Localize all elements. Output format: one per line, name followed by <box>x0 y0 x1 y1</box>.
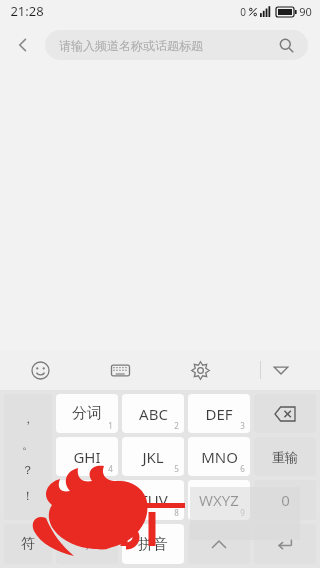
button[interactable]: 重输 <box>254 437 316 476</box>
staticText: ABC <box>139 404 168 424</box>
staticText: 21:28 <box>10 2 44 20</box>
other: Comma <box>56 524 118 564</box>
staticText: MNO <box>201 447 238 467</box>
staticText: 90 <box>299 4 312 19</box>
button[interactable]: PQRS <box>56 480 118 520</box>
button[interactable]: 符 <box>4 524 52 564</box>
button[interactable]: GHI <box>56 437 118 476</box>
button[interactable]: Settings <box>160 350 240 390</box>
staticText: GHI <box>73 447 101 467</box>
staticText: 0 <box>240 5 246 19</box>
button[interactable]: More <box>188 524 250 564</box>
button[interactable]: ， <box>4 394 52 520</box>
button[interactable]: 0 <box>254 480 316 520</box>
staticText: WXYZ <box>199 490 239 510</box>
staticText: DEF <box>205 404 233 424</box>
button[interactable]: JKL <box>122 437 184 476</box>
button[interactable]: Keyboard layout <box>80 350 160 390</box>
staticText: 拼音 <box>138 535 168 554</box>
staticText: 2 <box>174 420 179 431</box>
staticText: ？ <box>22 462 34 477</box>
staticText: ， <box>22 411 34 426</box>
button[interactable]: WXYZ <box>188 480 250 520</box>
staticText: 重输 <box>272 449 298 465</box>
button[interactable]: 分词 <box>56 394 118 433</box>
button[interactable]: 拼音 <box>122 524 184 564</box>
other: More <box>188 524 250 564</box>
staticText: JKL <box>142 447 164 467</box>
staticText: 4 <box>108 463 113 474</box>
staticText: 9 <box>240 507 245 518</box>
staticText: ， <box>80 535 94 553</box>
button[interactable]: Delete <box>254 394 316 433</box>
button[interactable]: 请输入频道名称或话题标题 <box>45 30 308 60</box>
button[interactable]: Back <box>6 28 40 62</box>
staticText: 1 <box>108 420 113 431</box>
button[interactable]: MNO <box>188 437 250 476</box>
button[interactable]: Enter <box>254 524 316 564</box>
button[interactable]: ABC <box>122 394 184 433</box>
button[interactable]: Hide keyboard <box>261 350 301 390</box>
other: Delete <box>254 394 316 433</box>
staticText: 请输入频道名称或话题标题 <box>59 38 203 53</box>
staticText: 8 <box>174 507 179 518</box>
other: Enter <box>254 524 316 564</box>
staticText: 6 <box>240 463 245 474</box>
button[interactable]: DEF <box>188 394 250 433</box>
button[interactable]: TUV <box>122 480 184 520</box>
staticText: PQRS <box>68 490 107 510</box>
button[interactable]: Comma <box>56 524 118 564</box>
staticText: TUV <box>139 490 168 510</box>
staticText: 0 <box>281 490 290 510</box>
staticText: 分词 <box>72 404 102 423</box>
staticText: ！ <box>22 488 34 503</box>
staticText: 3 <box>240 420 245 431</box>
staticText: 符 <box>21 535 35 553</box>
button[interactable]: Emoji <box>0 350 80 390</box>
staticText: 5 <box>174 463 179 474</box>
staticText: 。 <box>22 437 34 452</box>
